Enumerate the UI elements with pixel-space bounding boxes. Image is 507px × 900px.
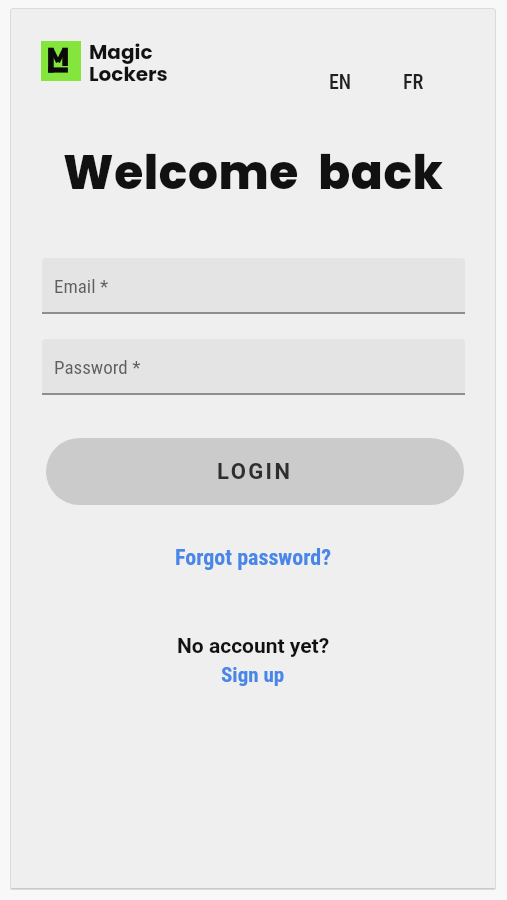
staticText: EN — [329, 70, 352, 93]
staticText: Forgot password? — [175, 545, 332, 571]
button[interactable]: EN — [329, 70, 352, 93]
button[interactable]: FR — [403, 70, 424, 93]
staticText: LOGIN — [217, 459, 293, 485]
staticText: No account yet? — [177, 634, 330, 659]
staticText: FR — [403, 70, 424, 93]
button[interactable]: Forgot password? — [175, 545, 332, 571]
button[interactable]: Password * — [42, 339, 465, 395]
staticText: Sign up — [221, 663, 285, 688]
staticText: Magic Lockers — [89, 38, 168, 88]
button[interactable]: Sign up — [221, 663, 285, 688]
button[interactable]: LOGIN — [46, 438, 464, 505]
button[interactable]: Email * — [42, 258, 465, 314]
staticText: Welcome back — [63, 140, 444, 206]
staticText: Password * — [54, 356, 141, 378]
staticText: Email * — [54, 275, 109, 297]
